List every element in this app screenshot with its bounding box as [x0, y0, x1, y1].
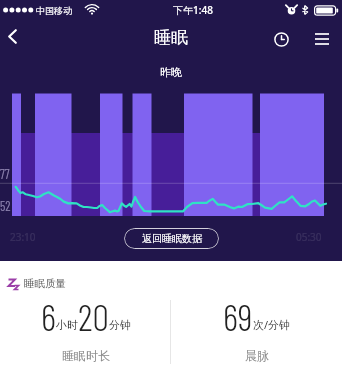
staticText: 小时 — [56, 318, 78, 332]
button[interactable]: 返回睡眠数据 — [124, 228, 219, 249]
staticText: 昨晚 — [0, 65, 342, 79]
staticText: 睡眠质量 — [24, 277, 66, 290]
button[interactable]: Menu — [304, 20, 340, 58]
button[interactable]: History — [263, 20, 299, 58]
staticText: 返回睡眠数据 — [142, 232, 202, 245]
staticText: 20 — [78, 294, 109, 338]
staticText: 下午1:48 — [173, 3, 213, 17]
staticText: 69 — [223, 294, 253, 338]
button[interactable]: Back — [0, 17, 24, 55]
staticText: 分钟 — [109, 318, 131, 332]
staticText: 中国移动 — [36, 5, 72, 16]
staticText: 次/分钟 — [253, 317, 291, 332]
staticText: 晨脉 — [245, 348, 269, 363]
staticText: 77 — [0, 166, 10, 182]
staticText: 睡眠 — [154, 27, 188, 48]
staticText: 睡眠时长 — [62, 348, 110, 363]
staticText: 6 — [41, 294, 56, 338]
staticText: 05:30 — [296, 230, 322, 244]
staticText: 52 — [0, 198, 11, 214]
staticText: 23:10 — [10, 230, 36, 244]
